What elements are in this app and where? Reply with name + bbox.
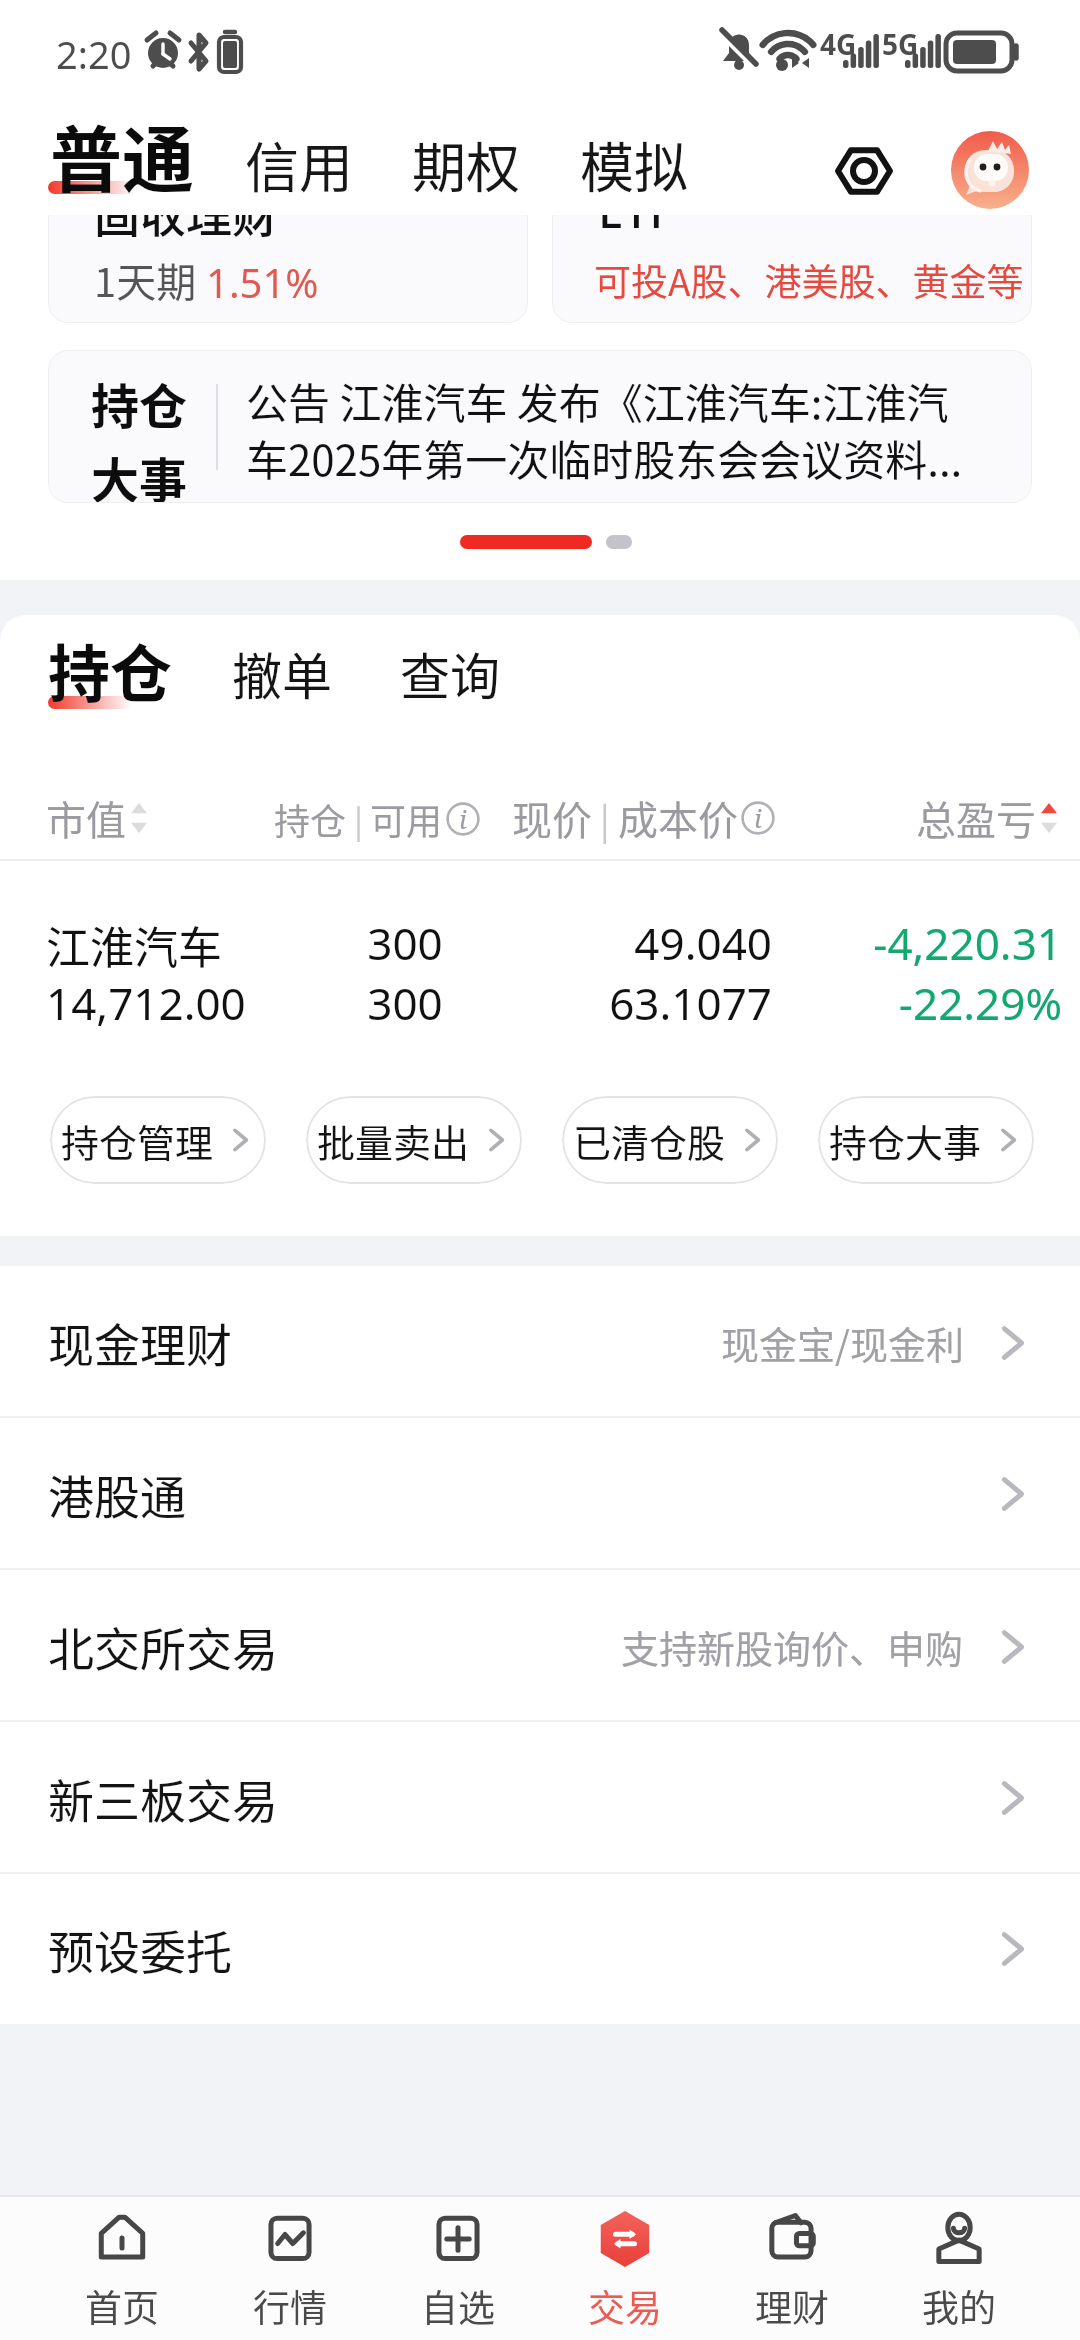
staticText: 我的 [922,2279,996,2333]
button[interactable]: 已清仓股 [562,1096,778,1184]
button[interactable]: 持仓 [48,350,1032,503]
staticText: 持仓 [274,793,347,845]
button[interactable]: 我的 [875,2197,1042,2333]
button[interactable]: 理财 [708,2197,875,2333]
button[interactable]: ETF [552,215,1032,323]
button[interactable]: 持仓大事 [818,1096,1034,1184]
staticText: 公告 江淮汽车 发布《江淮汽车:江淮汽车2025年第一次临时股东会会议资料... [246,370,986,489]
staticText: i [754,800,762,834]
staticText: | [347,796,370,842]
button[interactable]: 批量卖出 [306,1096,522,1184]
staticText: 300 [300,973,510,1033]
button[interactable]: Profile [951,131,1029,209]
button[interactable]: 模拟 [572,117,696,211]
staticText: -22.29% [780,973,1062,1033]
button[interactable]: 固收理财 [48,215,528,323]
staticText: 批量卖出 [317,1113,470,1168]
staticText: 63.1077 [540,973,772,1033]
staticText: -4,220.31 [780,913,1062,973]
button[interactable]: 持仓 [40,617,181,723]
staticText: 首页 [85,2279,159,2333]
staticText: 理财 [755,2279,829,2333]
staticText: i [459,801,467,835]
staticText: | [592,792,618,844]
button[interactable]: 预设委托 [0,1874,1080,2024]
staticText: 撤单 [232,637,332,709]
button[interactable]: 持仓管理 [50,1096,266,1184]
staticText: 北交所交易 [48,1613,278,1680]
button[interactable]: 撤单 [224,629,340,717]
staticText: 持仓 [91,368,188,438]
staticText: 成本价 [618,789,738,847]
staticText: 查询 [400,637,500,709]
staticText: 14,712.00 [46,973,246,1033]
staticText: 4G [820,25,857,63]
button[interactable]: 交易 [541,2197,708,2333]
button[interactable]: 普通 [40,96,205,212]
staticText: 5G [882,25,919,63]
staticText: 49.040 [540,913,772,973]
button[interactable]: Settings [826,133,902,209]
staticText: 期权 [412,125,520,203]
staticText: 1天期 [94,251,206,309]
staticText: 信用 [245,125,353,203]
staticText: 300 [300,913,510,973]
button[interactable]: 江淮汽车 [0,901,1080,1041]
staticText: 模拟 [580,125,688,203]
button[interactable]: 港股通 [0,1418,1080,1570]
staticText: 市值 [46,789,126,847]
staticText: 固收理财 [94,215,278,246]
staticText: 2:20 [56,28,132,80]
staticText: 普通 [50,102,195,206]
button[interactable]: 新三板交易 [0,1722,1080,1874]
staticText: 支持新股询价、申购 [621,1619,964,1674]
staticText: 现金理财 [48,1309,232,1376]
button[interactable]: 自选 [374,2197,541,2333]
staticText: 自选 [421,2279,495,2333]
button[interactable]: 查询 [392,629,508,717]
staticText: 大事 [91,442,188,503]
staticText: 总盈亏 [916,789,1036,847]
staticText: 行情 [253,2279,327,2333]
staticText: 预设委托 [48,1916,232,1983]
staticText: 港股通 [48,1461,186,1528]
button[interactable]: 北交所交易 [0,1570,1080,1722]
staticText: 可用 [370,793,443,845]
staticText: 江淮汽车 [46,913,222,977]
staticText: 现价 [512,789,592,847]
staticText: 1.51% [206,255,319,309]
button[interactable]: 行情 [206,2197,374,2333]
button[interactable]: 首页 [38,2197,206,2333]
staticText: 交易 [588,2279,662,2333]
button[interactable]: 现金理财 [0,1266,1080,1418]
staticText: 已清仓股 [573,1113,726,1168]
staticText: ETF [598,215,674,242]
button[interactable]: 期权 [404,117,528,211]
staticText: 新三板交易 [48,1765,278,1832]
staticText: 可投A股、港美股、黄金等 [594,253,1024,307]
button[interactable]: 信用 [237,117,361,211]
staticText: 持仓管理 [61,1113,214,1168]
staticText: 持仓大事 [829,1113,982,1168]
staticText: 现金宝/现金利 [721,1315,964,1370]
staticText: 持仓 [48,625,173,715]
